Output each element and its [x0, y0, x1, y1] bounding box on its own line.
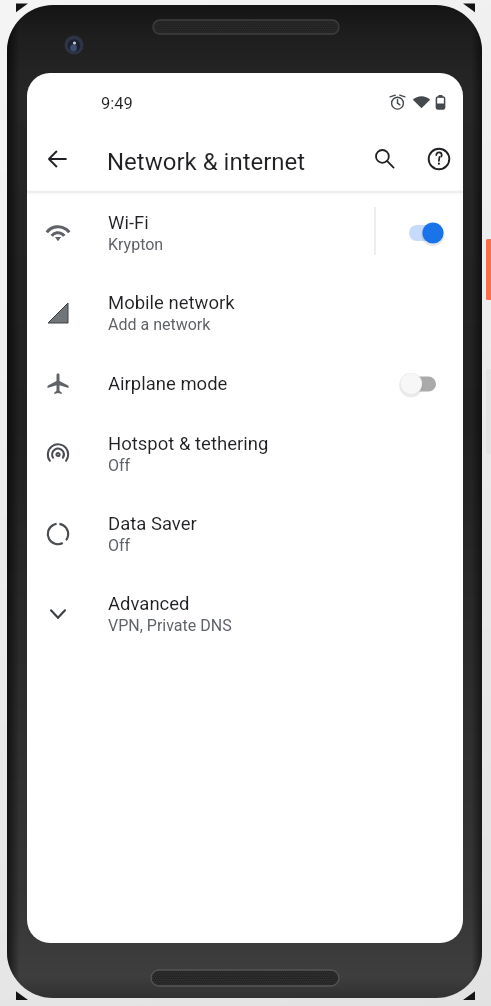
staticText: Hotspot & tethering: [108, 433, 269, 455]
staticText: Off: [108, 456, 131, 475]
staticText: VPN, Private DNS: [108, 616, 232, 635]
staticText: 9:49: [101, 94, 133, 113]
button[interactable]: Airplane mode: [27, 353, 463, 414]
staticText: Krypton: [108, 235, 164, 254]
staticText: Network & internet: [107, 148, 306, 176]
button[interactable]: Advanced: [27, 574, 463, 654]
staticText: Airplane mode: [108, 373, 228, 395]
button[interactable]: Wi-Fi: [27, 193, 463, 273]
button[interactable]: Airplane mode off: [392, 358, 452, 410]
staticText: Mobile network: [108, 292, 235, 314]
button[interactable]: Data Saver: [27, 494, 463, 574]
button[interactable]: Hotspot & tethering: [27, 414, 463, 494]
button[interactable]: Search: [364, 138, 406, 180]
button[interactable]: Help: [418, 138, 460, 180]
staticText: Wi-Fi: [108, 212, 149, 234]
staticText: Off: [108, 536, 131, 555]
button[interactable]: Back: [37, 138, 79, 180]
staticText: Advanced: [108, 593, 190, 615]
button[interactable]: Wi-Fi on: [397, 207, 457, 259]
button[interactable]: Mobile network: [27, 273, 463, 353]
staticText: Add a network: [108, 315, 211, 334]
staticText: Data Saver: [108, 513, 197, 535]
